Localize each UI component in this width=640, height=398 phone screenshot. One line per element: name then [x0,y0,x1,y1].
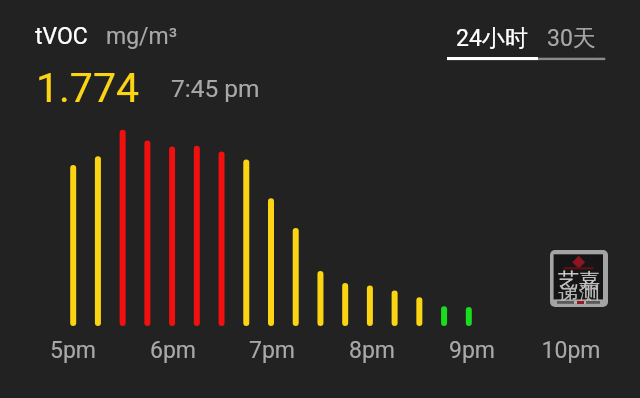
button[interactable]: 24小时 [447,24,538,64]
staticText: 艺嘉 [558,268,600,294]
staticText: tVOC [35,23,88,50]
staticText: 8pm [332,337,412,367]
staticText: 24小时 [456,24,528,53]
staticText: 6pm [133,337,213,367]
staticText: 7pm [232,337,312,367]
staticText: 递测 [558,281,600,307]
staticText: 30天 [547,24,596,53]
staticText: 9pm [432,337,512,367]
staticText: 7:45 pm [171,74,260,103]
other: Watermark logo [550,250,608,307]
staticText: 1.774 [36,64,139,112]
staticText: mg/m³ [106,23,178,50]
staticText: 10pm [531,337,611,367]
staticText: 5pm [33,337,113,367]
button[interactable]: 30天 [539,24,606,64]
